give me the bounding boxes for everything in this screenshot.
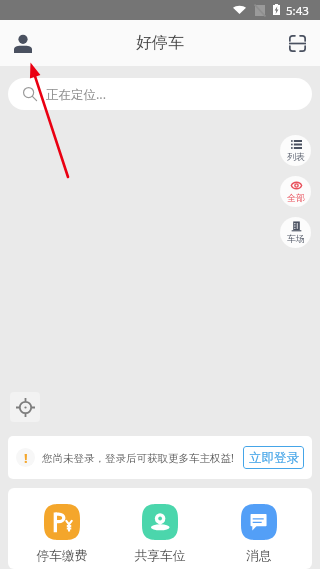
staticText: 列表 [287,151,305,162]
button[interactable]: 共享车位 [115,504,205,564]
button[interactable]: My location [10,392,40,422]
staticText: ! [24,449,28,467]
staticText: 立即登录 [249,450,299,466]
button[interactable]: 列表 [280,135,311,166]
button[interactable]: 车场 [280,217,311,248]
button[interactable]: 立即登录 [243,446,304,469]
staticText: 好停车 [136,33,184,53]
staticText: 5:43 [286,3,309,19]
button[interactable]: Profile [4,25,41,62]
staticText: 共享车位 [134,548,186,564]
button[interactable]: 停车缴费 [17,504,107,564]
staticText: 消息 [246,548,272,564]
staticText: 您尚未登录，登录后可获取更多车主权益! [42,451,234,465]
staticText: 车场 [287,233,305,244]
staticText: 全部 [287,192,305,203]
button[interactable]: 全部 [280,176,311,207]
button[interactable]: 正在定位... [8,78,312,110]
button[interactable]: Scan QR code [279,25,315,61]
staticText: 停车缴费 [36,548,88,564]
staticText: 正在定位... [46,86,107,103]
button[interactable]: 消息 [214,504,304,564]
